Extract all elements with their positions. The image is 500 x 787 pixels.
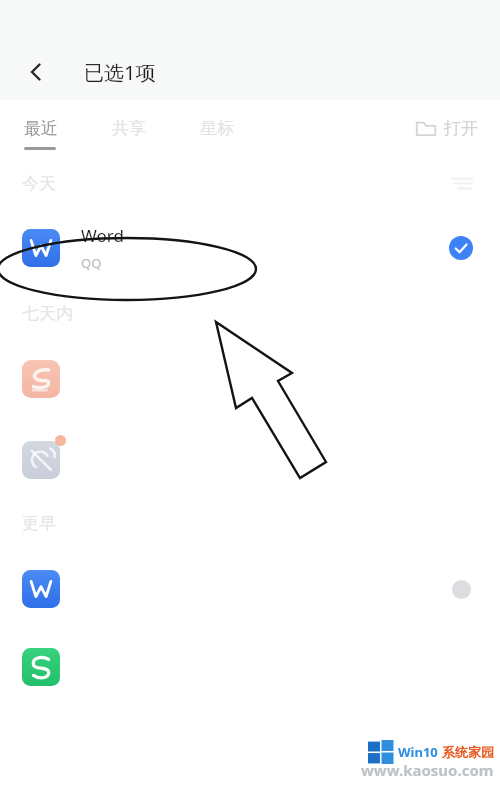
button[interactable]: Sort	[446, 167, 478, 199]
staticText: Word	[81, 224, 124, 247]
button[interactable]: 最近	[22, 110, 60, 147]
staticText: 今天	[22, 173, 56, 194]
staticText: 共享	[112, 118, 146, 139]
button[interactable]: Back	[14, 50, 58, 94]
button[interactable]: Select	[444, 572, 478, 606]
staticText: www.kaosuo.com	[361, 760, 494, 780]
button[interactable]: Selected	[444, 231, 478, 265]
staticText: QQ	[81, 254, 102, 272]
staticText: 打开	[444, 118, 478, 139]
button[interactable]	[0, 628, 500, 706]
button[interactable]: 共享	[110, 110, 148, 147]
staticText: 星标	[200, 118, 234, 139]
button[interactable]: 星标	[198, 110, 236, 147]
button[interactable]: Word	[0, 210, 500, 286]
button[interactable]: 打开	[411, 109, 482, 147]
staticText: 最近	[24, 118, 58, 139]
staticText: 七天内	[22, 303, 73, 324]
button[interactable]	[0, 340, 500, 418]
staticText: 已选1项	[84, 59, 156, 86]
staticText: 更早	[22, 513, 56, 534]
button[interactable]: Select	[0, 550, 500, 628]
staticText: Win10	[398, 743, 438, 761]
staticText: 系统家园	[442, 744, 494, 760]
button[interactable]	[0, 418, 500, 496]
